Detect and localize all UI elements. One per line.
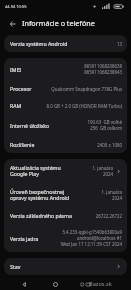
staticText: 865911068238643 — [84, 69, 122, 75]
staticText: 1. januára — [92, 165, 113, 171]
button[interactable]: Stav — [4, 258, 127, 275]
button[interactable]: Úroveň bezpečnostnej opravy systému Andr… — [4, 183, 127, 207]
staticText: 2400 x 1080 — [97, 142, 122, 148]
staticText: IMEI — [10, 66, 22, 73]
staticText: 2024 — [111, 195, 122, 201]
staticText: Úroveň bezpečnostnej opravy systému Andr… — [10, 188, 70, 202]
button[interactable]: Späť — [19, 279, 30, 290]
button[interactable]: Domov — [50, 279, 61, 290]
staticText: Bazos.sk — [89, 280, 112, 288]
staticText: 5.4.233-qgki-g1540b63800a9 — [62, 229, 122, 235]
button[interactable]: Aktualizácia systému Google Play — [4, 159, 127, 183]
staticText: 256 GB celkom — [90, 125, 122, 131]
button[interactable]: Verzia základného pásma — [4, 207, 127, 224]
staticText: Qualcomm Snapdragon 778G Plus — [51, 86, 122, 92]
button[interactable]: RAM — [4, 97, 127, 114]
button[interactable]: Verzia systému Android — [4, 35, 127, 52]
staticText: RAM — [10, 102, 22, 109]
staticText: 2024 — [102, 171, 113, 177]
button[interactable]: IMEI — [4, 58, 127, 80]
button[interactable]: Rozlíšenie — [4, 136, 127, 153]
button[interactable]: Interné úložisko — [4, 114, 127, 136]
staticText: Informácie o telefóne — [22, 18, 95, 28]
staticText: 44.94 10:55 — [5, 4, 27, 9]
staticText: Stav — [10, 263, 21, 270]
staticText: 190.63 GB voľné — [87, 119, 122, 125]
staticText: Verzia jadra — [10, 235, 39, 242]
staticText: Aktualizácia systému Google Play — [10, 164, 61, 178]
staticText: Interné úložisko — [10, 122, 50, 129]
staticText: Rozlíšenie — [10, 141, 35, 148]
staticText: 1. januára — [101, 189, 122, 195]
button[interactable]: Procesor — [4, 80, 127, 97]
staticText: 13 — [116, 41, 122, 47]
staticText: Verzia systému Android — [10, 40, 68, 47]
staticText: Verzia základného pásma — [10, 212, 72, 219]
staticText: Procesor — [10, 85, 32, 92]
staticText: 865911068208638 — [84, 63, 122, 69]
staticText: 26722,26722 — [95, 213, 122, 219]
staticText: 8.0 GB + 2.0 GB (HONOR RAM Turbo) — [46, 103, 122, 109]
button[interactable]: Späť — [6, 17, 19, 30]
staticText: Wed Jan 17 12:11:39 CST 2024 — [60, 241, 122, 247]
staticText: android@localhost #1 — [76, 235, 122, 241]
button[interactable]: Verzia jadra — [4, 224, 127, 252]
button[interactable]: Prehľad — [80, 280, 112, 288]
